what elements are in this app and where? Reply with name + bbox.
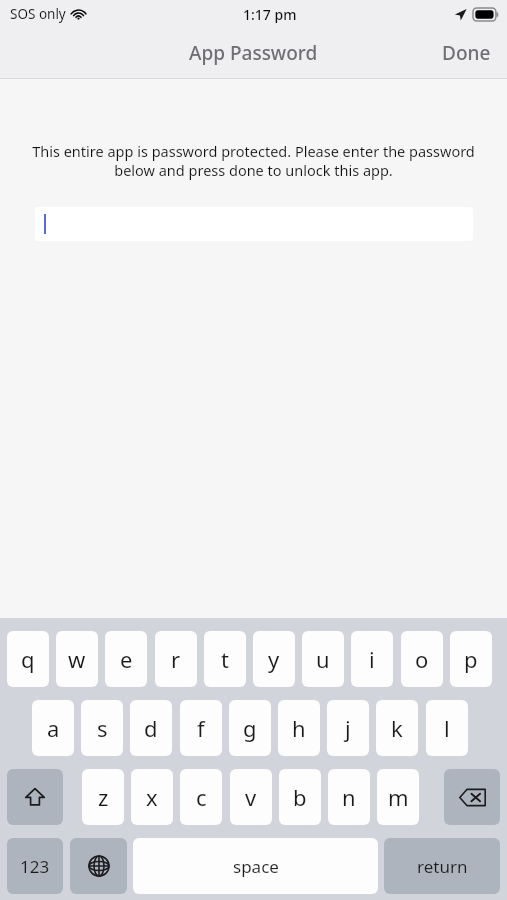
button[interactable]: a xyxy=(32,700,74,756)
staticText: v xyxy=(245,782,257,812)
button[interactable]: c xyxy=(180,769,222,825)
button[interactable] xyxy=(35,207,473,241)
button[interactable]: Done xyxy=(442,40,491,66)
button[interactable]: x xyxy=(131,769,173,825)
staticText: 1:17 pm xyxy=(243,5,297,24)
staticText: w xyxy=(68,644,86,674)
staticText: e xyxy=(120,644,133,674)
button[interactable]: f xyxy=(180,700,222,756)
button[interactable]: g xyxy=(229,700,271,756)
button[interactable]: k xyxy=(376,700,418,756)
button[interactable]: r xyxy=(155,631,197,687)
staticText: l xyxy=(444,713,450,743)
staticText: Done xyxy=(442,40,491,66)
staticText: t xyxy=(221,644,229,674)
staticText: x xyxy=(146,782,158,812)
button[interactable]: e xyxy=(105,631,147,687)
staticText: c xyxy=(196,782,207,812)
button[interactable]: t xyxy=(204,631,246,687)
staticText: m xyxy=(388,782,409,812)
staticText: k xyxy=(391,713,403,743)
button[interactable]: space xyxy=(133,838,378,894)
button[interactable]: i xyxy=(351,631,393,687)
staticText: z xyxy=(98,782,109,812)
staticText: return xyxy=(417,855,468,878)
staticText: u xyxy=(316,644,330,674)
button[interactable]: s xyxy=(81,700,123,756)
button[interactable]: Backspace xyxy=(444,769,500,825)
staticText: r xyxy=(171,644,181,674)
staticText: b xyxy=(293,782,307,812)
button[interactable]: b xyxy=(279,769,321,825)
staticText: space xyxy=(233,855,279,878)
button[interactable]: j xyxy=(327,700,369,756)
staticText: n xyxy=(342,782,356,812)
staticText: q xyxy=(21,644,35,674)
staticText: s xyxy=(97,713,108,743)
staticText: SOS only xyxy=(10,5,66,23)
button[interactable]: Shift xyxy=(7,769,63,825)
button[interactable]: z xyxy=(82,769,124,825)
staticText: g xyxy=(243,713,257,743)
button[interactable]: p xyxy=(450,631,492,687)
staticText: a xyxy=(47,713,60,743)
staticText: j xyxy=(345,713,351,743)
button[interactable]: n xyxy=(328,769,370,825)
button[interactable]: return xyxy=(384,838,500,894)
staticText: 123 xyxy=(20,855,50,878)
staticText: i xyxy=(369,644,375,674)
button[interactable]: w xyxy=(56,631,98,687)
staticText: This entire app is password protected. P… xyxy=(18,141,489,180)
staticText: y xyxy=(268,644,280,674)
button[interactable]: m xyxy=(377,769,419,825)
button[interactable]: o xyxy=(401,631,443,687)
button[interactable]: 123 xyxy=(7,838,63,894)
button[interactable]: q xyxy=(7,631,49,687)
button[interactable]: l xyxy=(426,700,468,756)
staticText: d xyxy=(144,713,158,743)
staticText: o xyxy=(415,644,429,674)
button[interactable]: d xyxy=(130,700,172,756)
button[interactable]: h xyxy=(278,700,320,756)
button[interactable]: v xyxy=(230,769,272,825)
button[interactable]: Change keyboard language xyxy=(70,838,127,894)
button[interactable]: u xyxy=(302,631,344,687)
staticText: f xyxy=(197,713,205,743)
staticText: p xyxy=(464,644,478,674)
button[interactable]: y xyxy=(253,631,295,687)
staticText: App Password xyxy=(189,40,318,66)
staticText: h xyxy=(292,713,306,743)
